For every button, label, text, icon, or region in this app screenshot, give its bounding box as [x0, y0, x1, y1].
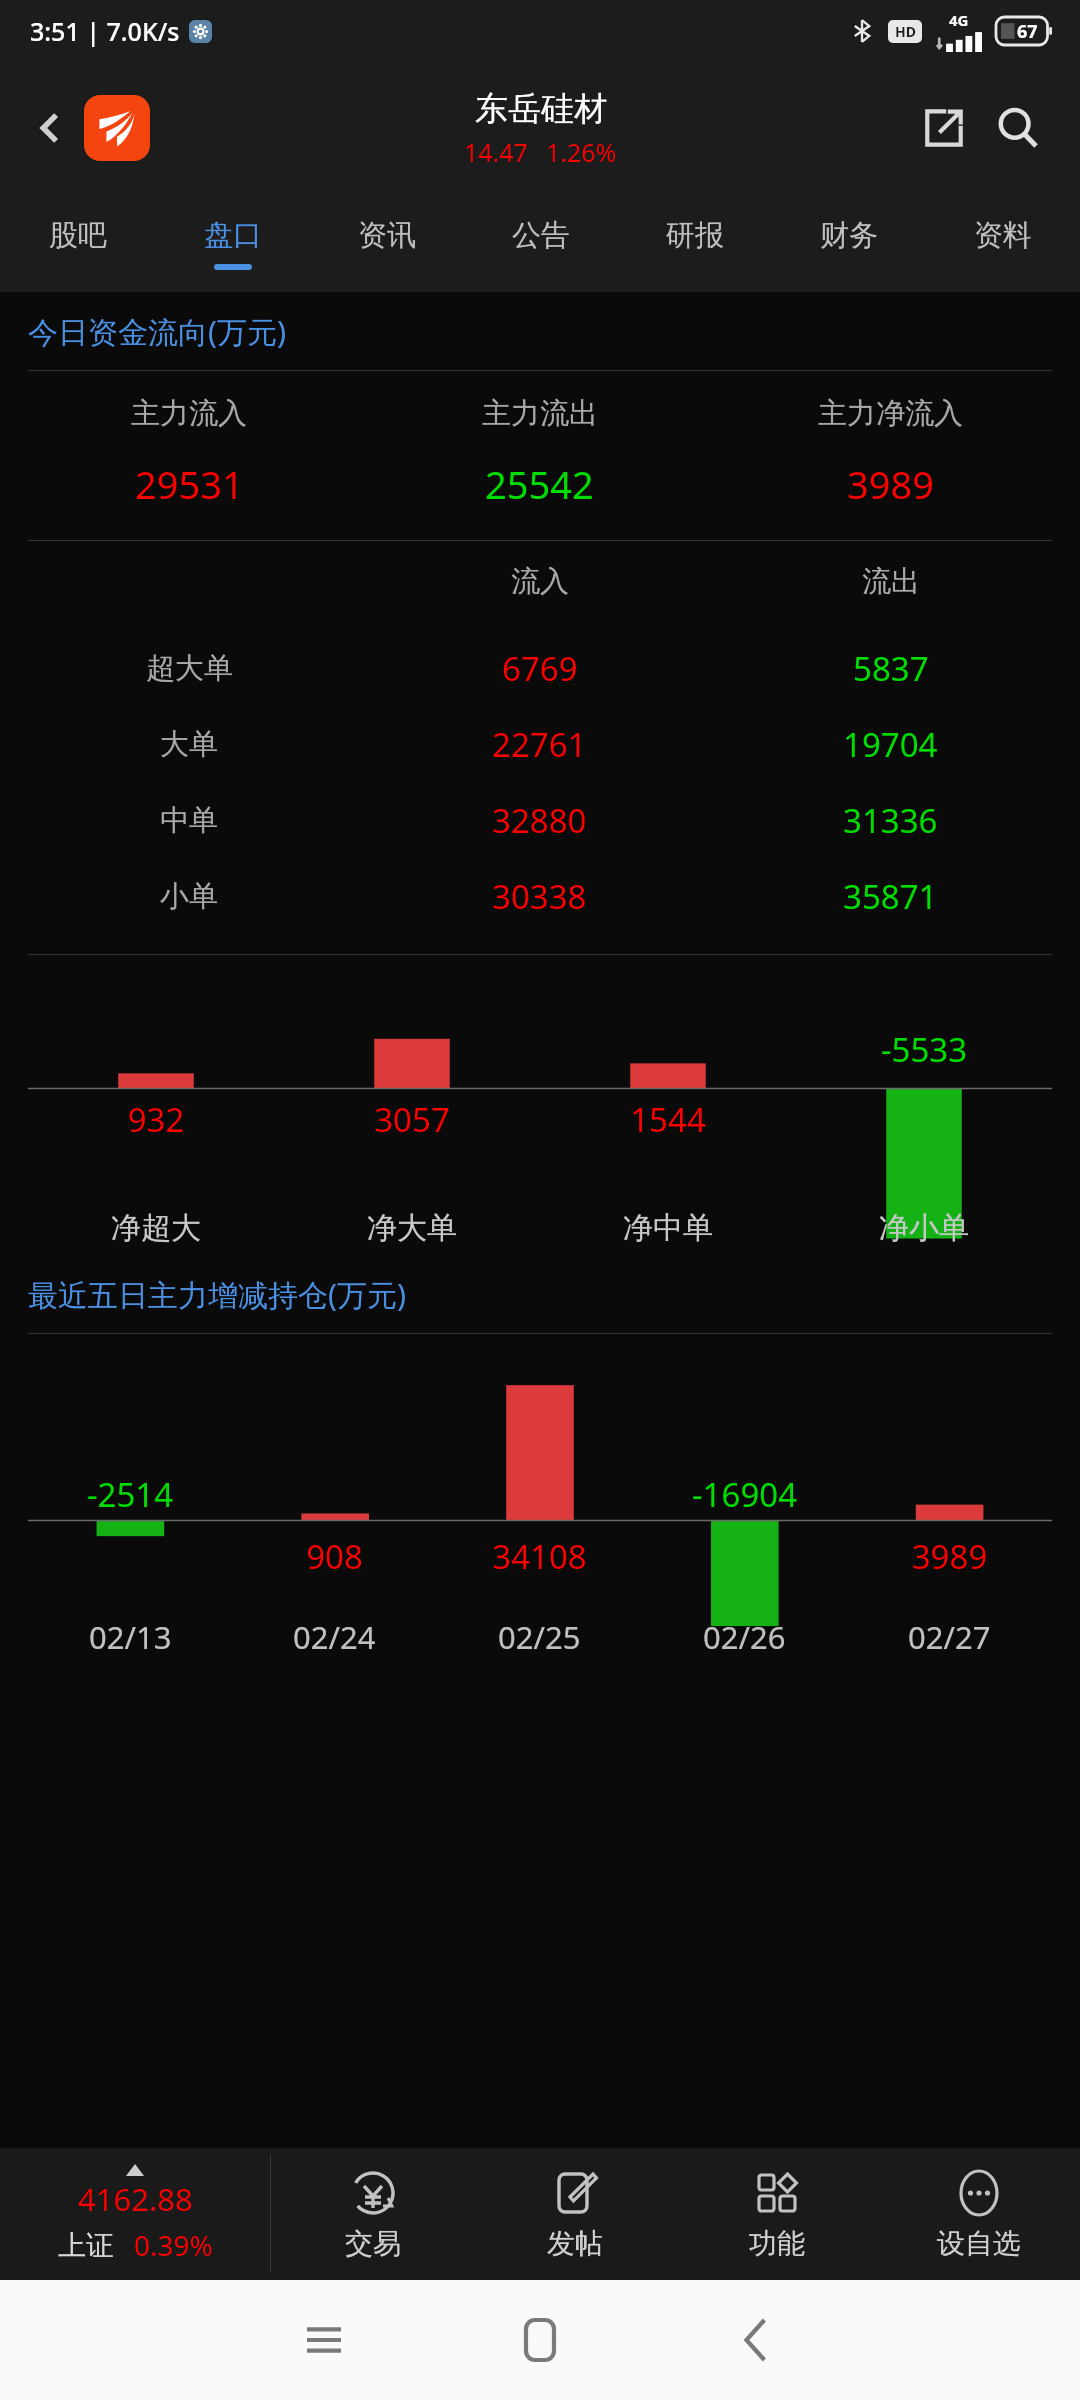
staticText: 功能	[749, 2226, 805, 2261]
button[interactable]: 财务	[772, 194, 926, 292]
staticText: -2514	[28, 1472, 232, 1517]
staticText: 34108	[437, 1534, 642, 1579]
staticText: 盘口	[204, 217, 262, 254]
staticText: 19704	[843, 722, 938, 767]
staticText: 3:51 | 7.0K/s	[30, 14, 180, 48]
staticText: 14.47	[464, 135, 528, 169]
staticText: 3989	[847, 1534, 1052, 1579]
button[interactable]: 研报	[618, 194, 772, 292]
staticText: 研报	[666, 217, 724, 254]
button[interactable]: 功能	[676, 2148, 878, 2280]
staticText: 资料	[974, 217, 1032, 254]
staticText: 股吧	[49, 217, 107, 254]
staticText: 设自选	[937, 2226, 1021, 2261]
staticText: 净小单	[879, 1209, 969, 1247]
button[interactable]: 发帖	[474, 2148, 676, 2280]
staticText: 25542	[485, 458, 594, 510]
staticText: 今日资金流向(万元)	[28, 311, 286, 352]
staticText: 流入	[511, 563, 569, 600]
staticText: HD	[895, 22, 916, 41]
staticText: 大单	[160, 726, 218, 763]
staticText: 主力流入	[131, 395, 247, 432]
staticText: 小单	[160, 878, 218, 915]
staticText: 流出	[862, 563, 920, 600]
button[interactable]: 资讯	[310, 194, 464, 292]
staticText: 02/25	[498, 1616, 581, 1658]
staticText: 67	[1017, 19, 1038, 44]
staticText: 4162.88	[78, 2178, 193, 2220]
staticText: 5837	[853, 646, 929, 691]
staticText: 上证	[58, 2228, 114, 2263]
button[interactable]: 4162.88	[0, 2148, 270, 2280]
button[interactable]: 股吧	[0, 194, 155, 292]
staticText: 4G	[949, 10, 969, 30]
staticText: 公告	[512, 217, 570, 254]
button[interactable]: 交易	[271, 2148, 474, 2280]
staticText: 6769	[502, 646, 578, 691]
button[interactable]: Search	[980, 90, 1056, 166]
button[interactable]: Home	[432, 2280, 648, 2400]
button[interactable]: 盘口	[155, 194, 310, 292]
staticText: 3057	[284, 1097, 540, 1142]
staticText: 22761	[492, 722, 587, 767]
staticText: 资讯	[358, 217, 416, 254]
staticText: 02/26	[703, 1616, 786, 1658]
staticText: 30338	[492, 874, 587, 919]
staticText: 净大单	[367, 1209, 457, 1247]
button[interactable]: Back	[16, 94, 84, 162]
staticText: 32880	[492, 798, 587, 843]
button[interactable]: 设自选	[878, 2148, 1080, 2280]
button[interactable]: Back	[648, 2280, 864, 2400]
button[interactable]: Share	[908, 92, 980, 164]
staticText: 东岳硅材	[475, 88, 607, 130]
staticText: -16904	[642, 1472, 847, 1517]
staticText: 最近五日主力增减持仓(万元)	[28, 1274, 406, 1315]
button[interactable]: 公告	[464, 194, 618, 292]
staticText: 02/27	[908, 1616, 991, 1658]
staticText: -5533	[796, 1027, 1052, 1072]
staticText: 932	[28, 1097, 284, 1142]
staticText: 财务	[820, 217, 878, 254]
staticText: 908	[232, 1534, 437, 1579]
staticText: 1544	[540, 1097, 796, 1142]
staticText: 净中单	[623, 1209, 713, 1247]
staticText: 中单	[160, 802, 218, 839]
staticText: 0.39%	[134, 2226, 213, 2264]
staticText: 净超大	[111, 1209, 201, 1247]
button[interactable]: 资料	[926, 194, 1080, 292]
staticText: 29531	[135, 458, 244, 510]
staticText: 超大单	[146, 650, 233, 687]
staticText: 3989	[847, 458, 934, 510]
staticText: 31336	[843, 798, 938, 843]
staticText: 35871	[843, 874, 938, 919]
staticText: 02/24	[293, 1616, 376, 1658]
staticText: 主力净流入	[818, 395, 963, 432]
staticText: 交易	[345, 2226, 401, 2261]
staticText: 主力流出	[482, 395, 598, 432]
staticText: 发帖	[547, 2226, 603, 2261]
button[interactable]: App logo	[84, 95, 150, 161]
button[interactable]: Recents	[216, 2280, 432, 2400]
staticText: 1.26%	[546, 135, 617, 169]
staticText: 02/13	[89, 1616, 172, 1658]
